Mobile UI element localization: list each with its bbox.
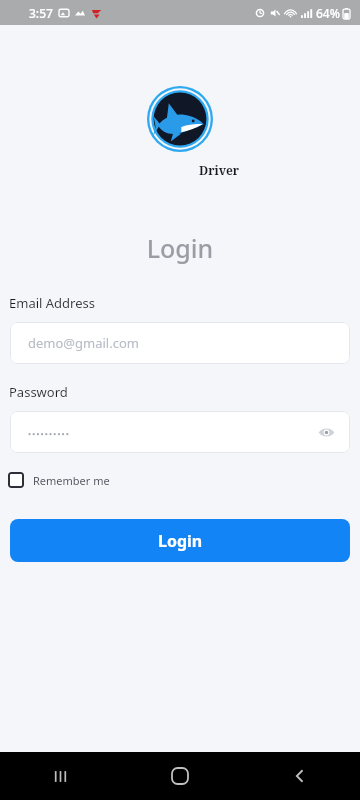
staticText: Driver xyxy=(199,162,240,178)
button[interactable]: Show password xyxy=(10,411,350,453)
staticText: Password xyxy=(9,383,68,401)
staticText: Remember me xyxy=(33,473,110,488)
staticText: 3:57 xyxy=(29,5,53,21)
staticText: Login xyxy=(0,231,360,265)
staticText: Email Address xyxy=(9,294,95,312)
button[interactable]: Back xyxy=(278,754,322,798)
button[interactable]: Login xyxy=(10,519,350,562)
button[interactable]: Recent apps xyxy=(38,754,82,798)
staticText: demo@gmail.com xyxy=(28,334,139,352)
staticText: Login xyxy=(158,530,203,552)
button[interactable]: Remember me xyxy=(8,467,110,493)
staticText: 64% xyxy=(316,5,340,21)
button[interactable]: Show password xyxy=(316,422,336,442)
button[interactable]: Home xyxy=(158,754,202,798)
button[interactable]: demo@gmail.com xyxy=(10,322,350,364)
